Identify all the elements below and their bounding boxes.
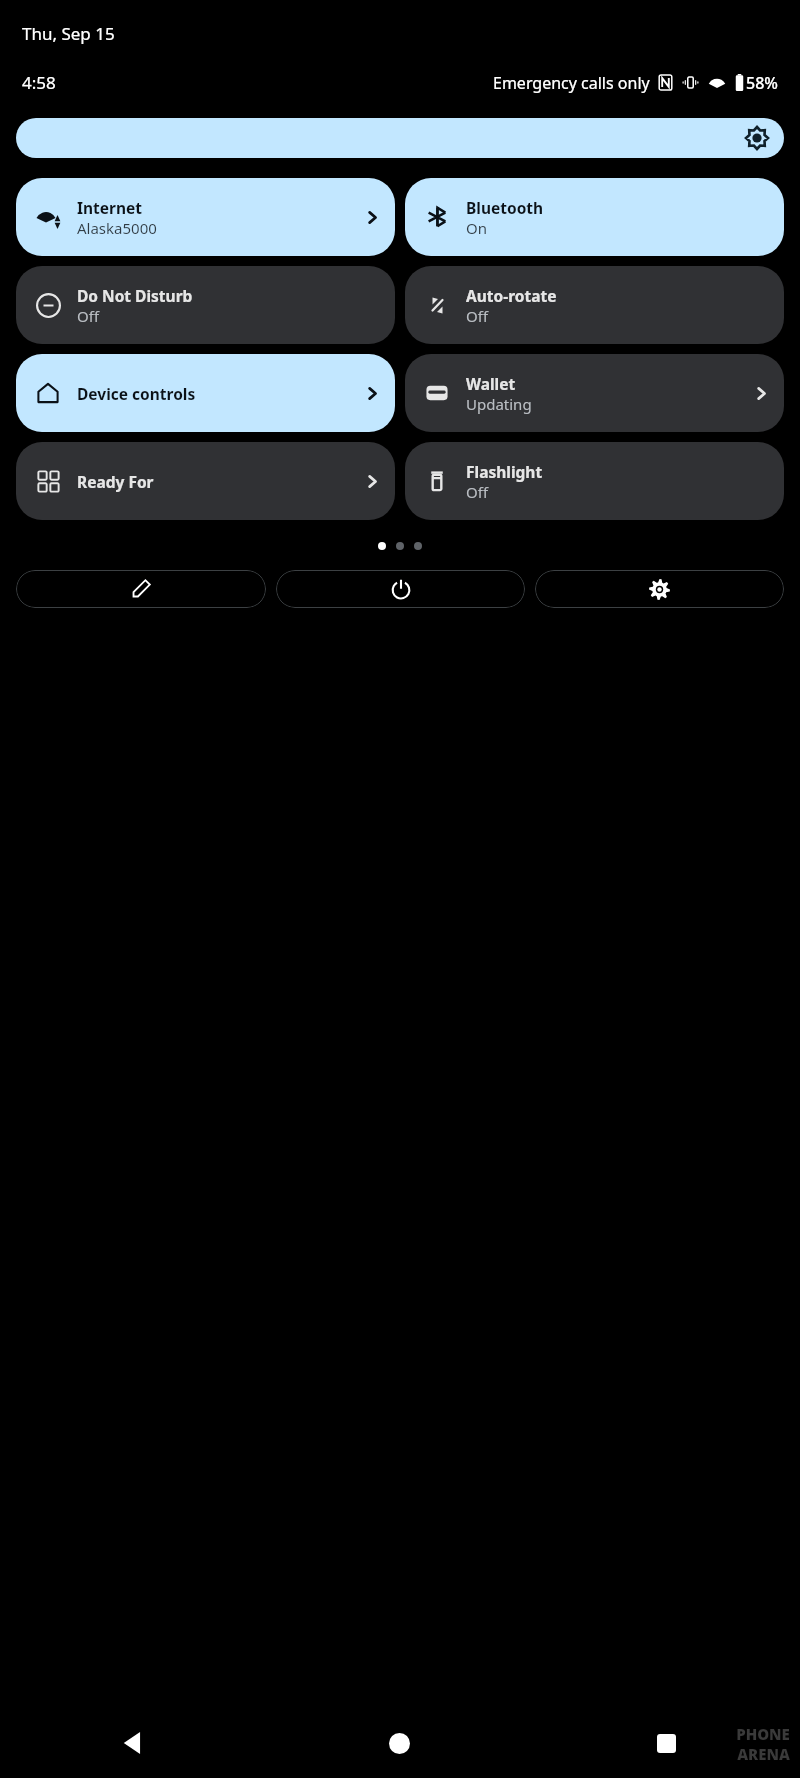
staticText: Internet xyxy=(77,197,143,218)
button[interactable]: Back xyxy=(0,1708,266,1778)
button[interactable]: Ready For xyxy=(16,442,395,520)
staticText: Device controls xyxy=(77,383,196,404)
button[interactable]: Auto-rotate xyxy=(405,266,784,344)
button[interactable]: Do Not Disturb xyxy=(16,266,395,344)
button[interactable]: Home xyxy=(266,1708,533,1778)
staticText: 58% xyxy=(746,72,778,94)
button[interactable]: Recent apps xyxy=(533,1708,800,1778)
staticText: On xyxy=(466,218,487,238)
button[interactable]: Flashlight xyxy=(405,442,784,520)
staticText: 4:58 xyxy=(22,71,56,94)
staticText: Off xyxy=(466,482,489,502)
staticText: Off xyxy=(77,306,100,326)
button[interactable]: Brightness xyxy=(16,118,784,158)
staticText: Auto-rotate xyxy=(466,285,557,306)
staticText: PHONE xyxy=(736,1724,790,1744)
staticText: Flashlight xyxy=(466,461,543,482)
staticText: Thu, Sep 15 xyxy=(22,22,115,45)
button[interactable]: Device controls xyxy=(16,354,395,432)
staticText: Alaska5000 xyxy=(77,218,157,238)
button[interactable]: Bluetooth xyxy=(405,178,784,256)
staticText: Bluetooth xyxy=(466,197,544,218)
staticText: Off xyxy=(466,306,489,326)
staticText: Wallet xyxy=(466,373,516,394)
staticText: ARENA xyxy=(737,1744,790,1764)
staticText: Ready For xyxy=(77,471,154,492)
button[interactable]: Settings xyxy=(535,570,784,608)
button[interactable]: Wallet xyxy=(405,354,784,432)
staticText: Do Not Disturb xyxy=(77,285,193,306)
staticText: Emergency calls only xyxy=(493,72,650,94)
button[interactable]: Power xyxy=(276,570,525,608)
staticText: Updating xyxy=(466,394,532,414)
button[interactable]: Internet xyxy=(16,178,395,256)
button[interactable]: Edit xyxy=(16,570,266,608)
